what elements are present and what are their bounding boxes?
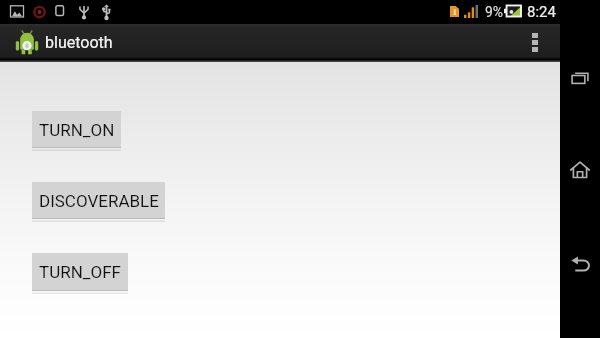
button[interactable]: TURN_OFF [32, 253, 128, 291]
button[interactable]: DISCOVERABLE [32, 182, 165, 219]
staticText: 9% [485, 4, 504, 20]
button[interactable]: Recent apps [560, 59, 600, 99]
staticText: bluetooth [45, 33, 113, 52]
staticText: TURN_ON [39, 120, 115, 140]
button[interactable]: More options [512, 24, 560, 57]
staticText: 8:24 [527, 3, 556, 21]
staticText: TURN_OFF [39, 262, 121, 282]
button[interactable]: Back [561, 244, 600, 284]
button[interactable]: TURN_ON [32, 111, 121, 148]
staticText: DISCOVERABLE [39, 191, 159, 211]
button[interactable]: Home [560, 150, 600, 190]
